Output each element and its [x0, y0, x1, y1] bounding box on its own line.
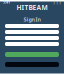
staticText: 9:41 — [3, 0, 10, 5]
staticText: HITBEAM — [16, 3, 47, 12]
staticText: | | | — [53, 0, 61, 5]
staticText: Sign In — [23, 16, 40, 23]
